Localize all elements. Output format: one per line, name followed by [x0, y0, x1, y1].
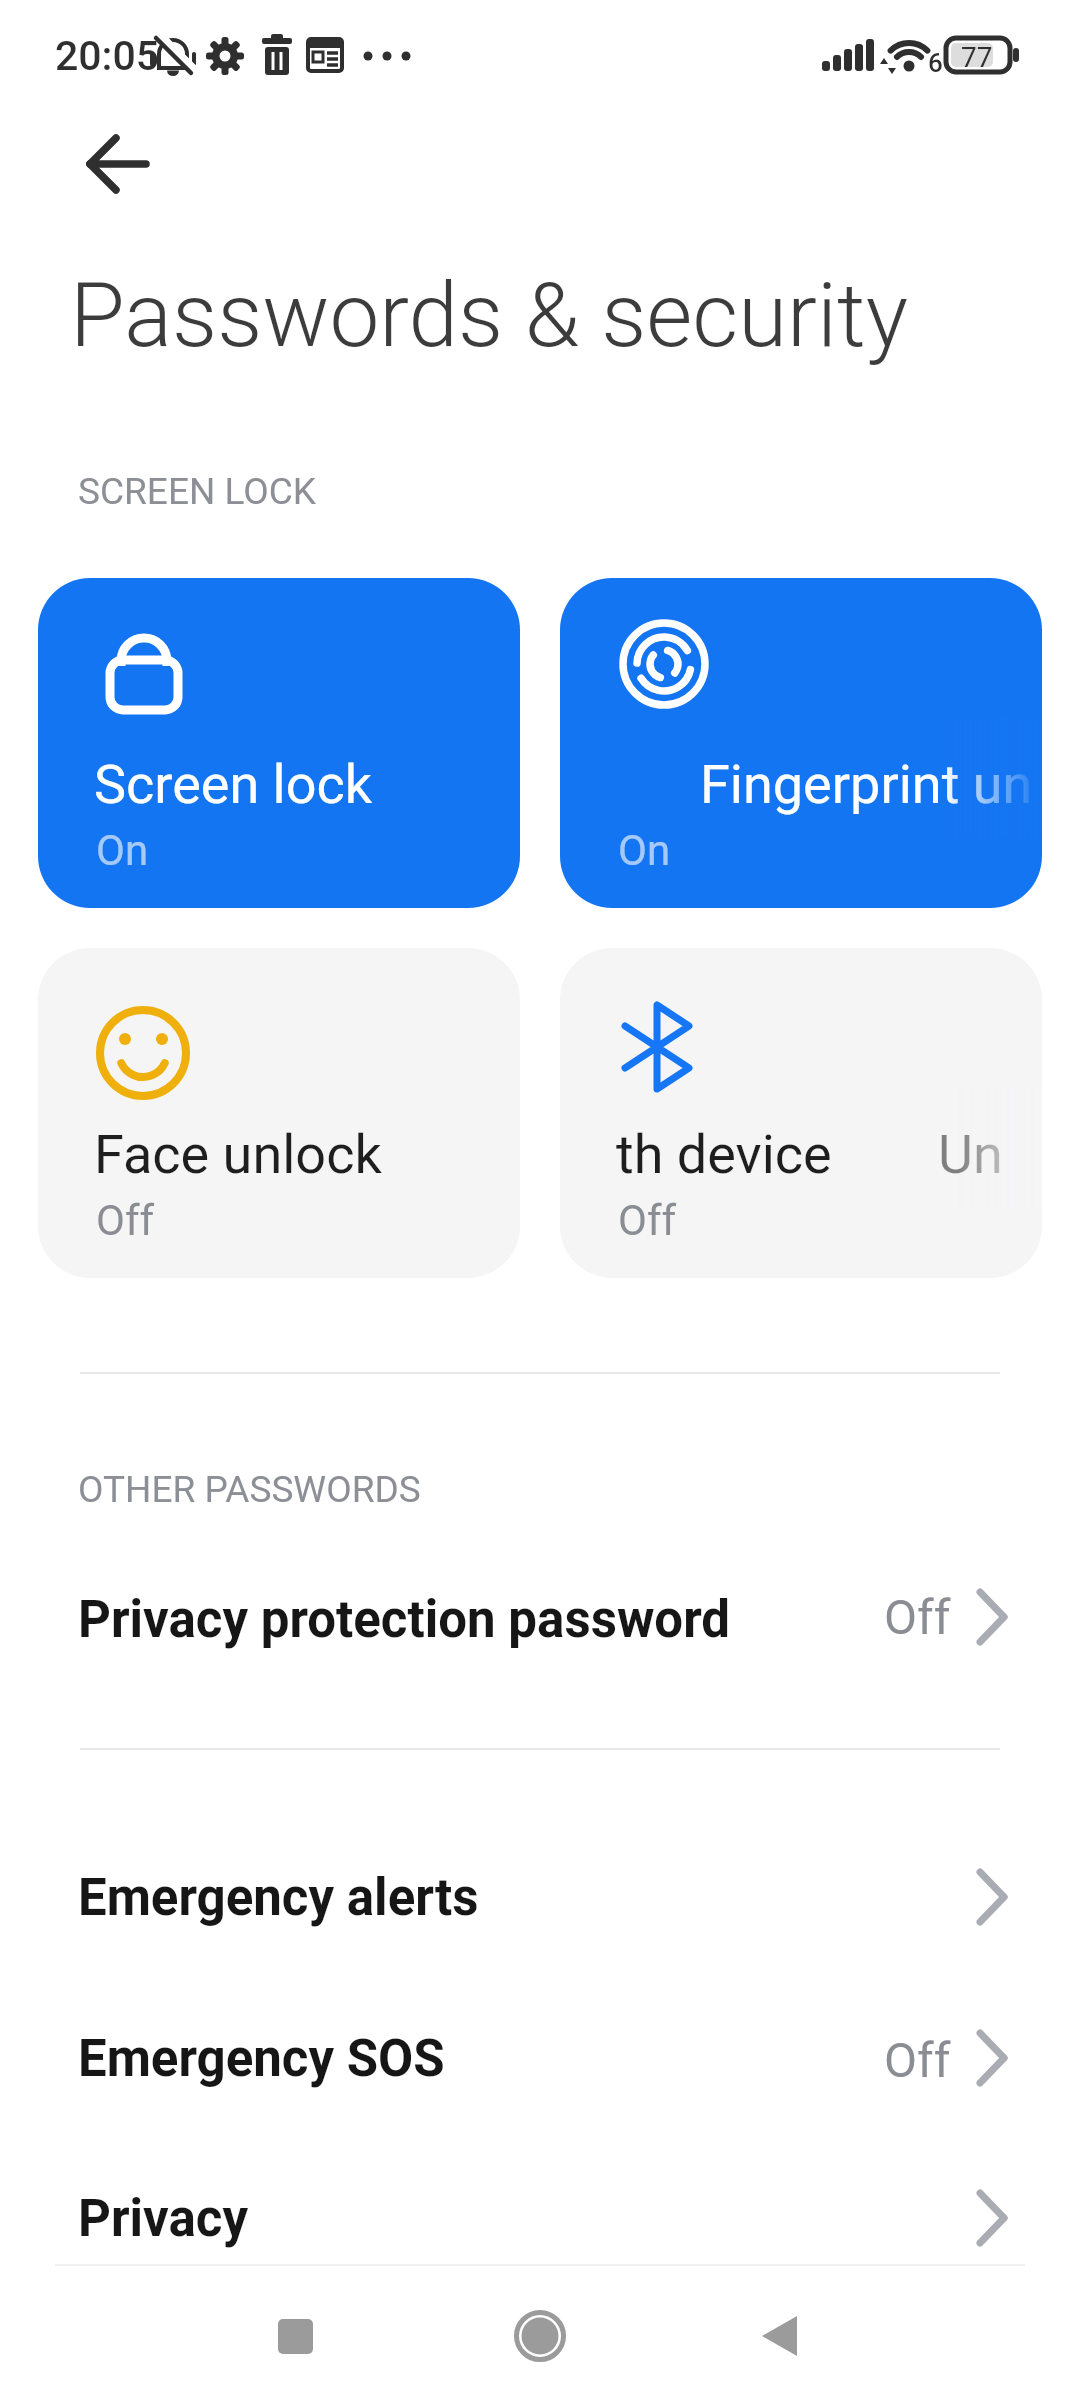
staticText: Emergency SOS: [78, 2029, 445, 2089]
button[interactable]: [725, 2296, 840, 2376]
staticText: Emergency alerts: [78, 1868, 479, 1928]
staticText: Fingerprint un: [700, 753, 1033, 816]
button[interactable]: Emergency alerts: [0, 1827, 1080, 1967]
button[interactable]: Privacy protection password: [0, 1547, 1080, 1687]
staticText: 20:05: [55, 32, 160, 80]
button[interactable]: [483, 2296, 598, 2376]
staticText: On: [618, 826, 671, 875]
staticText: Un: [938, 1123, 1003, 1186]
staticText: Privacy: [78, 2189, 249, 2249]
staticText: 77: [961, 41, 993, 74]
button[interactable]: Face unlock: [38, 948, 520, 1278]
button[interactable]: [64, 122, 174, 206]
staticText: Privacy protection password: [78, 1590, 731, 1650]
staticText: SCREEN LOCK: [78, 470, 316, 513]
button[interactable]: Fingerprint un: [560, 578, 1042, 908]
button[interactable]: [238, 2296, 353, 2376]
staticText: th device: [616, 1123, 832, 1186]
staticText: Off: [884, 1589, 951, 1645]
button[interactable]: th device: [560, 948, 1042, 1278]
staticText: Off: [96, 1196, 155, 1245]
button[interactable]: Emergency SOS: [0, 1988, 1080, 2128]
button[interactable]: Screen lock: [38, 578, 520, 908]
staticText: OTHER PASSWORDS: [78, 1468, 421, 1511]
staticText: Face unlock: [94, 1123, 382, 1186]
staticText: Off: [884, 2032, 951, 2088]
staticText: Passwords & security: [70, 263, 909, 367]
staticText: On: [96, 826, 149, 875]
staticText: Off: [618, 1196, 677, 1245]
button[interactable]: Privacy: [0, 2148, 1080, 2288]
staticText: 6: [928, 48, 943, 78]
staticText: Screen lock: [94, 753, 373, 816]
